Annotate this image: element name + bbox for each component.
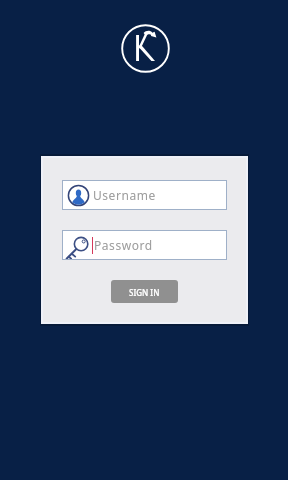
button[interactable]: Password xyxy=(62,230,227,260)
button[interactable]: SIGN IN xyxy=(111,280,178,303)
staticText: Username xyxy=(93,187,156,203)
staticText: Password xyxy=(94,237,153,253)
other: App logo xyxy=(121,24,170,73)
staticText: SIGN IN xyxy=(129,287,160,298)
button[interactable]: Username xyxy=(62,180,227,210)
